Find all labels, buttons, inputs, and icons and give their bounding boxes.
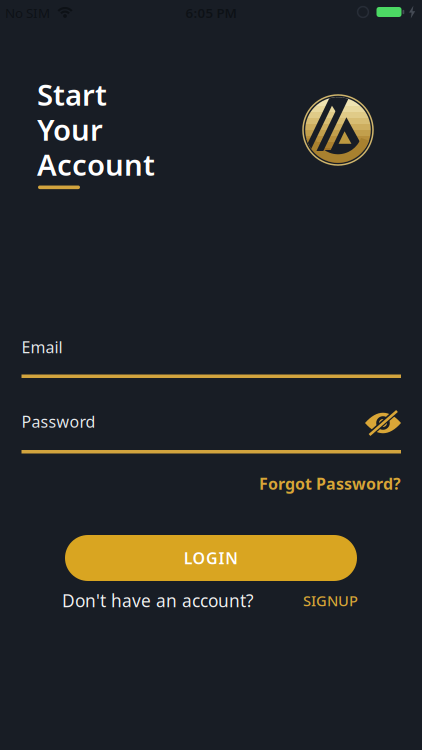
button[interactable]: Email: [21, 336, 401, 378]
staticText: 6:05 PM: [185, 4, 236, 22]
button[interactable]: [365, 410, 401, 434]
staticText: Password: [21, 411, 95, 432]
staticText: No SIM: [5, 4, 50, 22]
staticText: Account: [37, 145, 155, 184]
button[interactable]: LOGIN: [65, 535, 357, 581]
staticText: Don't have an account?: [62, 589, 254, 612]
button[interactable]: SIGNUP: [303, 591, 358, 610]
button[interactable]: Forgot Password?: [259, 473, 401, 494]
staticText: Your: [37, 110, 103, 149]
staticText: Email: [21, 336, 62, 358]
button[interactable]: Password: [21, 411, 401, 453]
staticText: LOGIN: [184, 547, 238, 569]
staticText: SIGNUP: [303, 591, 358, 610]
staticText: Forgot Password?: [259, 473, 401, 494]
staticText: Start: [37, 75, 107, 114]
